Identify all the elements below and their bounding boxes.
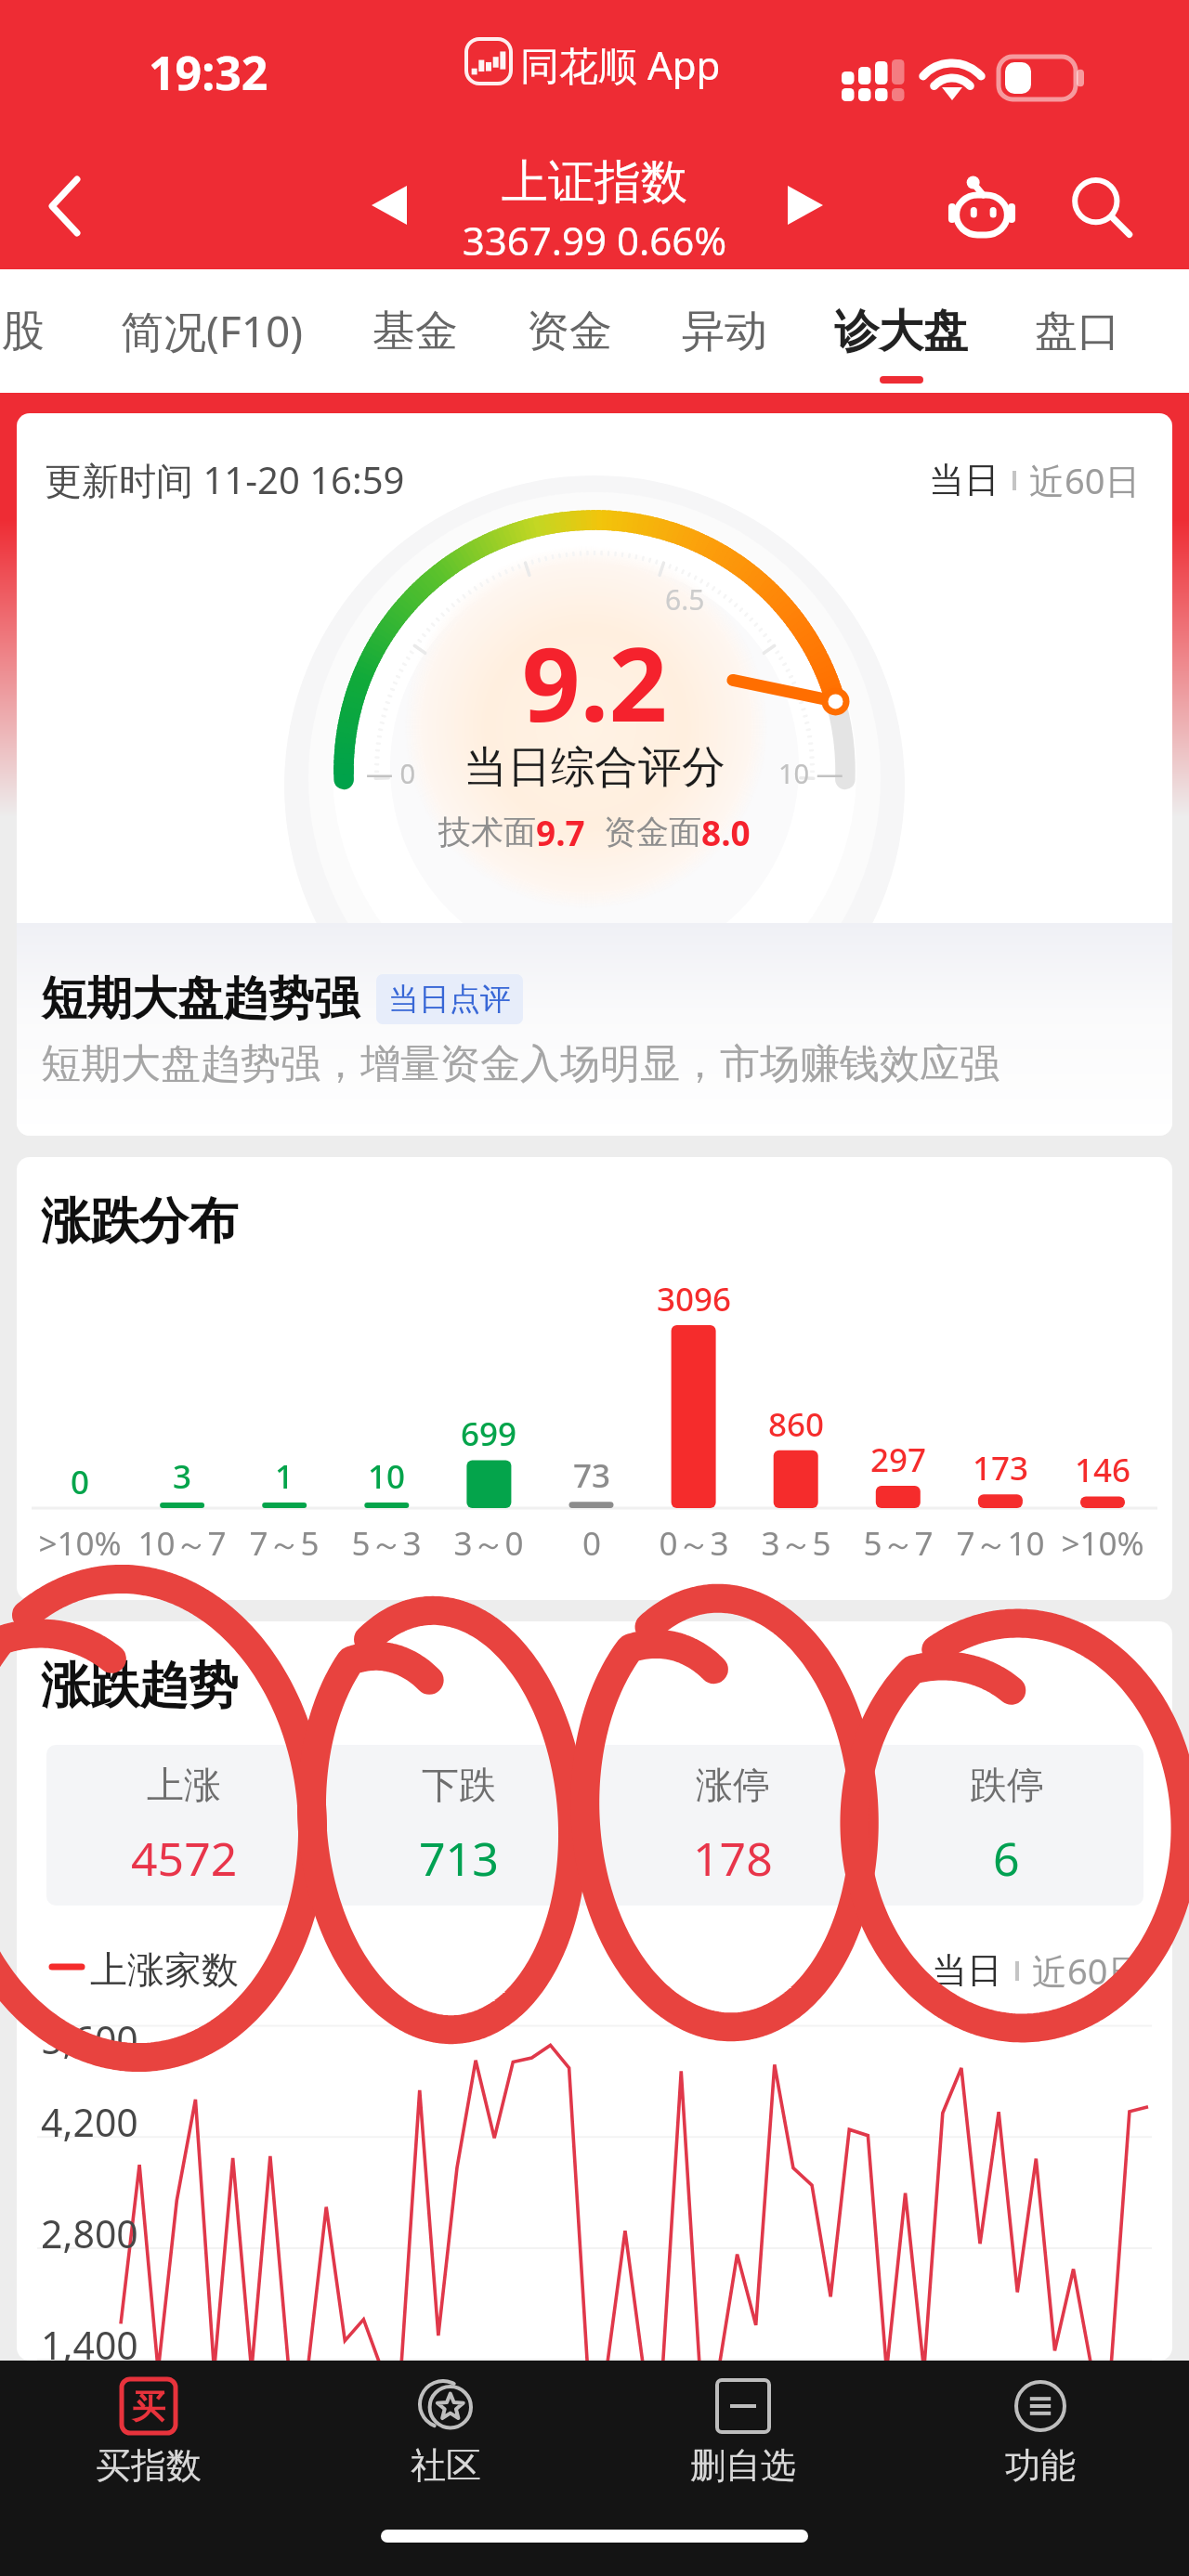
button[interactable]: 社区 bbox=[297, 2361, 594, 2505]
button[interactable]: 近60日 bbox=[1032, 1935, 1143, 2006]
button[interactable]: 短期大盘趋势强 bbox=[17, 923, 1172, 1136]
button[interactable]: 当日 bbox=[932, 1937, 1002, 2004]
staticText: 技术面 bbox=[438, 812, 536, 852]
staticText: 上涨 bbox=[147, 1762, 221, 1808]
button[interactable]: 盘口 bbox=[1013, 269, 1143, 393]
staticText: 73 bbox=[542, 1453, 642, 1498]
staticText: 个股 bbox=[0, 305, 45, 358]
staticText: 9.2 bbox=[409, 612, 780, 751]
staticText: 3 bbox=[132, 1454, 232, 1499]
staticText: 下跌 bbox=[422, 1762, 496, 1808]
staticText: 713 bbox=[419, 1827, 499, 1890]
staticText: 买指数 bbox=[96, 2443, 202, 2488]
button[interactable]: Back bbox=[30, 172, 98, 241]
staticText: 当日综合评分 bbox=[316, 740, 873, 795]
button[interactable]: 异动 bbox=[660, 269, 790, 393]
staticText: 10 bbox=[336, 1454, 437, 1499]
staticText: 上涨家数 bbox=[90, 1946, 239, 1993]
staticText: 297 bbox=[848, 1438, 948, 1482]
staticText: 资金 bbox=[527, 305, 612, 358]
staticText: 0～3 bbox=[642, 1521, 746, 1566]
staticText: 699 bbox=[438, 1412, 539, 1456]
staticText: >10% bbox=[28, 1521, 132, 1566]
staticText: 近60日 bbox=[1029, 456, 1141, 504]
staticText: 近60日 bbox=[1032, 1946, 1143, 1995]
staticText: 178 bbox=[693, 1827, 773, 1890]
button[interactable]: AI assistant bbox=[940, 167, 1024, 251]
staticText: 5～7 bbox=[846, 1521, 950, 1566]
button[interactable]: Search bbox=[1063, 169, 1141, 247]
button[interactable]: 简况(F10) bbox=[82, 269, 342, 393]
staticText: 简况(F10) bbox=[121, 302, 304, 360]
staticText: 短期大盘趋势强 bbox=[41, 970, 359, 1028]
staticText: 诊大盘 bbox=[834, 304, 968, 359]
staticText: 7～10 bbox=[948, 1521, 1052, 1566]
staticText: 3367.99 0.66% bbox=[362, 214, 827, 267]
button[interactable]: Next index bbox=[771, 175, 840, 236]
staticText: 1 bbox=[234, 1454, 334, 1499]
staticText: 涨跌分布 bbox=[41, 1190, 238, 1253]
staticText: 当日点评 bbox=[388, 980, 511, 1019]
button[interactable]: 跌停 bbox=[869, 1745, 1143, 1906]
staticText: 基金 bbox=[372, 305, 458, 358]
staticText: 上证指数 bbox=[362, 153, 827, 212]
button[interactable]: 涨停 bbox=[595, 1745, 869, 1906]
staticText: 7～5 bbox=[232, 1521, 336, 1566]
staticText: 同花顺 App bbox=[520, 38, 721, 91]
staticText: 异动 bbox=[682, 305, 767, 358]
button[interactable]: 诊大盘 bbox=[819, 269, 983, 393]
button[interactable]: 当日 bbox=[929, 447, 1000, 514]
staticText: 3～0 bbox=[437, 1521, 541, 1566]
staticText: 9.7 bbox=[536, 809, 585, 855]
staticText: 3～5 bbox=[744, 1521, 848, 1566]
staticText: 资金面 bbox=[604, 812, 701, 852]
button[interactable]: 功能 bbox=[892, 2361, 1189, 2505]
staticText: 跌停 bbox=[970, 1762, 1044, 1808]
staticText: 当日 bbox=[932, 1948, 1002, 1993]
staticText: 涨停 bbox=[696, 1762, 770, 1808]
button[interactable]: 个股 bbox=[0, 269, 67, 393]
button[interactable]: Previous index bbox=[355, 175, 424, 236]
button[interactable]: 买 bbox=[0, 2361, 297, 2505]
staticText: 173 bbox=[950, 1446, 1051, 1490]
staticText: 0 bbox=[30, 1460, 130, 1504]
staticText: 3096 bbox=[644, 1277, 744, 1321]
button[interactable]: 下跌 bbox=[321, 1745, 595, 1906]
staticText: 涨跌趋势 bbox=[41, 1655, 238, 1717]
button[interactable]: 基金 bbox=[350, 269, 480, 393]
staticText: 当日 bbox=[929, 458, 1000, 502]
staticText: 19:32 bbox=[149, 41, 268, 104]
staticText: 短期大盘趋势强，增量资金入场明显，市场赚钱效应强 bbox=[41, 1039, 1000, 1089]
button[interactable]: 上涨 bbox=[46, 1745, 321, 1906]
staticText: 盘口 bbox=[1035, 305, 1120, 358]
staticText: >10% bbox=[1051, 1521, 1155, 1566]
staticText: 5～3 bbox=[334, 1521, 438, 1566]
button[interactable]: 删自选 bbox=[594, 2361, 892, 2505]
staticText: 6.5 bbox=[665, 580, 705, 618]
staticText: 5,600 bbox=[41, 2013, 138, 2065]
button[interactable]: 资金 bbox=[504, 269, 634, 393]
staticText: 0 bbox=[540, 1521, 644, 1566]
staticText: — 0 bbox=[366, 755, 416, 791]
staticText: 10～7 bbox=[130, 1521, 234, 1566]
staticText: 社区 bbox=[411, 2443, 481, 2488]
staticText: 更新时间 11-20 16:59 bbox=[45, 454, 405, 505]
staticText: 删自选 bbox=[690, 2443, 796, 2488]
staticText: 860 bbox=[746, 1402, 846, 1447]
staticText: 4,200 bbox=[41, 2096, 138, 2148]
staticText: 8.0 bbox=[701, 809, 751, 855]
staticText: 4572 bbox=[131, 1827, 238, 1890]
staticText: 10 — bbox=[778, 755, 843, 791]
staticText: 1,400 bbox=[41, 2319, 138, 2361]
staticText: 146 bbox=[1052, 1448, 1153, 1492]
staticText: 买 bbox=[132, 2386, 165, 2427]
staticText: 6 bbox=[993, 1827, 1020, 1890]
button[interactable]: 近60日 bbox=[1029, 445, 1141, 515]
staticText: 功能 bbox=[1005, 2443, 1076, 2488]
staticText: 2,800 bbox=[41, 2207, 138, 2259]
